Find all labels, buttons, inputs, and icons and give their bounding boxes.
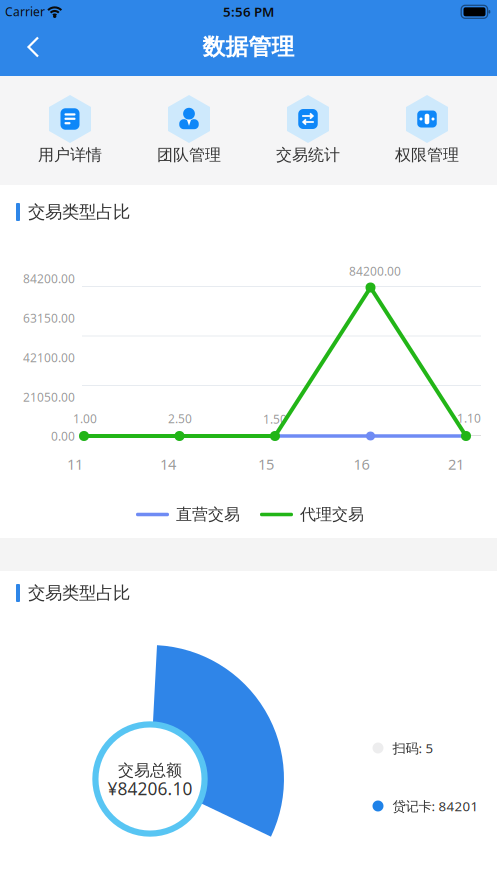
staticText: 交易类型占比 (28, 201, 130, 223)
staticText: 权限管理 (395, 145, 459, 165)
staticText: 84200.00 (23, 270, 75, 286)
staticText: 交易总额 (118, 761, 182, 780)
staticText: 0.00 (51, 428, 75, 444)
staticText: 扫码: 5 (392, 739, 433, 757)
staticText: 63150.00 (23, 310, 75, 326)
staticText: 1.00 (73, 410, 97, 426)
staticText: 2.50 (168, 410, 192, 426)
button[interactable]: 用户详情 (15, 83, 125, 179)
staticText: 14 (160, 454, 176, 474)
staticText: 代理交易 (300, 505, 364, 524)
staticText: 21050.00 (23, 389, 75, 405)
staticText: 42100.00 (23, 349, 75, 365)
button[interactable]: Back (10, 20, 54, 74)
staticText: 84200.00 (349, 263, 401, 279)
staticText: 交易类型占比 (28, 582, 130, 604)
button[interactable]: 贷记卡: 84201 (372, 797, 497, 815)
staticText: 16 (353, 454, 369, 474)
button[interactable]: 团队管理 (134, 83, 244, 179)
staticText: Carrier (5, 3, 45, 19)
button[interactable]: 扫码: 5 (372, 739, 497, 757)
staticText: 1.50 (263, 411, 287, 427)
staticText: 21 (448, 454, 464, 474)
button[interactable]: 交易统计 (253, 83, 363, 179)
staticText: 贷记卡: 84201 (392, 797, 478, 815)
staticText: ¥84206.10 (107, 777, 192, 800)
staticText: 交易统计 (276, 145, 340, 165)
staticText: 用户详情 (38, 145, 102, 165)
button[interactable]: 权限管理 (372, 83, 482, 179)
staticText: 团队管理 (157, 145, 221, 165)
staticText: 5:56 PM (223, 3, 274, 20)
staticText: 数据管理 (202, 33, 294, 61)
staticText: 11 (67, 454, 83, 474)
button[interactable]: 代理交易 (260, 505, 375, 524)
staticText: 15 (258, 454, 274, 474)
staticText: 直营交易 (176, 505, 240, 524)
staticText: 1.10 (457, 410, 481, 426)
button[interactable]: 直营交易 (136, 505, 251, 524)
